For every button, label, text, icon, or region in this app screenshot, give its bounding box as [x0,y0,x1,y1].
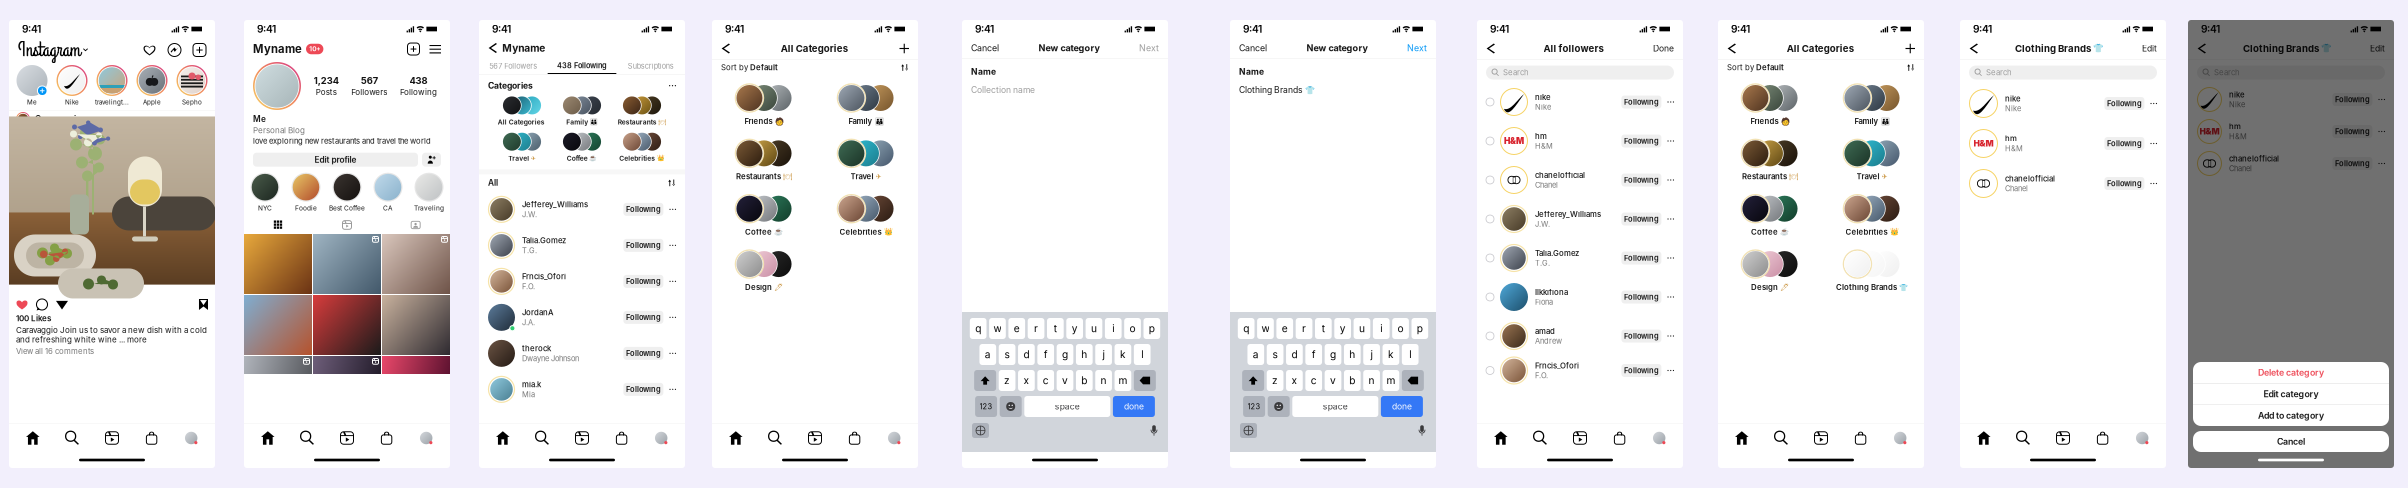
button[interactable]: Delete category [2193,362,2389,383]
button[interactable]: Coffee [721,194,807,237]
button[interactable]: Shop [367,425,406,451]
button[interactable]: 123 [975,396,997,417]
button[interactable]: y [1334,318,1351,339]
button[interactable]: Family [552,96,612,126]
button[interactable]: Shop [132,425,171,451]
button[interactable]: Coffee [1727,194,1813,237]
button[interactable]: e [1276,318,1293,339]
button[interactable]: Instagram [18,37,88,63]
button[interactable]: Grid [244,218,313,232]
button[interactable]: 567 [351,75,387,97]
button[interactable]: Restaurants [612,96,672,126]
button[interactable]: w [1257,318,1274,339]
button[interactable]: Celebrities [1829,194,1915,237]
button[interactable]: Profile [874,425,914,451]
button[interactable]: f [1305,344,1322,365]
button[interactable]: q [1238,318,1254,339]
button[interactable]: Shift [1242,370,1264,391]
button[interactable]: Emoji [1000,396,1022,417]
button[interactable]: CA [369,173,407,212]
button[interactable]: amad [1477,316,1683,355]
button[interactable]: o [1392,318,1409,339]
button[interactable]: Design [721,250,807,292]
button[interactable]: Celebrities [823,194,909,237]
button[interactable]: 438 [400,75,437,97]
button[interactable]: Cancel [2193,431,2389,452]
button[interactable]: i [1105,318,1122,339]
button[interactable]: done [1381,396,1423,417]
button[interactable]: Sort [668,179,676,187]
button[interactable]: H&M [1477,121,1683,160]
button[interactable]: Emoji [1268,396,1290,417]
button[interactable]: Home [248,425,288,451]
button[interactable]: Like [16,299,28,310]
button[interactable]: Reels [313,218,381,232]
button[interactable]: Home [1481,425,1521,451]
button[interactable]: Menu [429,43,441,55]
button[interactable]: All Categories [492,96,552,126]
button[interactable]: Travel [1829,139,1915,181]
button[interactable]: p [1143,318,1160,339]
button[interactable]: Sort [1907,63,1915,71]
button[interactable]: Search [756,425,795,451]
button[interactable]: w [989,318,1006,339]
button[interactable]: Family [1829,83,1915,126]
button[interactable]: Save [199,299,208,310]
button[interactable]: Foodie [287,173,325,212]
button[interactable]: Jefferey_Williams [1477,199,1683,238]
button[interactable]: Apple [133,65,170,106]
button[interactable]: d [1286,344,1303,365]
button[interactable]: nike [2188,83,2394,115]
button[interactable]: a [1247,344,1264,365]
button[interactable]: b [1344,370,1361,391]
button[interactable]: Restaurants [1727,139,1813,181]
button[interactable]: Traveling [410,173,448,212]
button[interactable]: v [1057,370,1073,391]
button[interactable]: Reels [1560,425,1600,451]
button[interactable]: q [970,318,986,339]
button[interactable]: s [999,344,1015,365]
button[interactable]: New post [407,43,419,55]
button[interactable]: Me [13,65,50,106]
button[interactable]: Profile [1639,425,1679,451]
button[interactable]: Jefferey_Williams [479,191,685,227]
button[interactable]: 123 [1243,396,1265,417]
button[interactable]: Share [56,298,68,310]
button[interactable]: g [1057,344,1073,365]
button[interactable]: t [1047,318,1064,339]
button[interactable]: Nike [53,65,90,106]
button[interactable]: Myname [253,42,323,56]
button[interactable]: Cancel [971,43,999,53]
button[interactable]: c [1037,370,1054,391]
button[interactable]: Shop [1841,425,1880,451]
button[interactable]: 1,234 [314,75,339,97]
button[interactable]: Dictate [1418,425,1426,436]
button[interactable]: Search [53,425,92,451]
button[interactable]: Travel [492,132,552,162]
button[interactable]: Next [1139,43,1159,53]
button[interactable]: Celebrities [612,132,672,162]
button[interactable]: Friends [721,83,807,126]
button[interactable]: Back [721,43,729,53]
button[interactable]: s [1267,344,1283,365]
button[interactable]: New category [899,44,909,53]
button[interactable]: Reels [327,425,367,451]
button[interactable]: Change keyboard [1240,423,1257,438]
button[interactable]: j [1095,344,1112,365]
button[interactable]: H&M [1960,123,2166,163]
button[interactable]: 567 Followers [479,58,548,74]
button[interactable]: nike [1960,83,2166,123]
button[interactable]: Talia.Gomez [1477,238,1683,277]
button[interactable]: Shop [1600,425,1639,451]
button[interactable]: u [1086,318,1102,339]
button[interactable]: v [1325,370,1341,391]
button[interactable]: nike [1477,82,1683,121]
button[interactable]: Search [288,425,327,451]
button[interactable]: y [1066,318,1083,339]
button[interactable]: Profile [406,425,446,451]
button[interactable]: Home [716,425,756,451]
button[interactable]: c [1305,370,1322,391]
button[interactable]: Profile [641,425,681,451]
button[interactable]: chanelofficial [1477,160,1683,199]
